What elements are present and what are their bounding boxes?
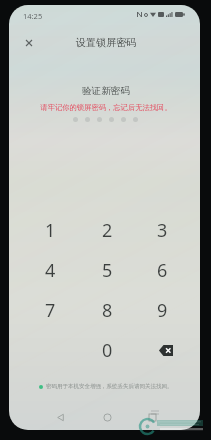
button[interactable]: Close <box>17 31 41 55</box>
button[interactable]: 1 <box>24 212 76 248</box>
button[interactable]: 3 <box>136 212 188 248</box>
button[interactable]: 7 <box>24 292 76 328</box>
button[interactable]: Recents <box>141 406 163 428</box>
staticText: 9 <box>157 298 168 323</box>
staticText: 密码用于本机安全增强，系统丢失后请同关法找回。 <box>46 383 173 390</box>
button[interactable]: 0 <box>81 332 133 368</box>
staticText: 14:25 <box>23 11 43 21</box>
staticText: 8 <box>102 298 113 323</box>
button[interactable]: Back <box>49 406 71 428</box>
button[interactable]: 6 <box>136 252 188 288</box>
staticText: 7 <box>45 298 56 323</box>
button[interactable]: 5 <box>81 252 133 288</box>
button[interactable]: 8 <box>81 292 133 328</box>
button[interactable]: Home <box>96 406 118 428</box>
button[interactable]: 2 <box>81 212 133 248</box>
staticText: 0 <box>102 338 113 363</box>
button[interactable]: 9 <box>136 292 188 328</box>
staticText: 1 <box>45 218 56 243</box>
staticText: 2 <box>102 218 113 243</box>
staticText: 4 <box>45 258 56 283</box>
staticText: 请牢记你的锁屏密码，忘记后无法找回。 <box>40 103 172 112</box>
button[interactable]: 4 <box>24 252 76 288</box>
staticText: 3 <box>157 218 168 243</box>
staticText: 设置锁屏密码 <box>76 36 136 49</box>
staticText: 6 <box>157 258 168 283</box>
button[interactable]: Delete <box>136 332 188 368</box>
staticText: 验证新密码 <box>82 85 130 97</box>
staticText: 5 <box>102 258 113 283</box>
